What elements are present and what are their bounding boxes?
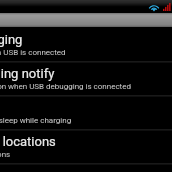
button[interactable]: Stay awake: [0, 97, 172, 131]
other: Wi-Fi: [148, 2, 160, 12]
staticText: USB debugging: [0, 32, 23, 47]
button[interactable]: Allow mock locations: [0, 131, 172, 165]
button[interactable]: USB debugging: [0, 29, 172, 63]
staticText: USB debugging notify: [0, 66, 55, 81]
staticText: Debug mode when USB is connected: [0, 48, 66, 57]
staticText: Screen will never sleep while charging: [0, 116, 72, 125]
button[interactable]: USB debugging notify: [0, 63, 172, 97]
staticText: Allow mock locations: [0, 150, 11, 159]
staticText: Allow mock locations: [0, 134, 56, 149]
staticText: Show a notification when USB debugging i…: [0, 82, 131, 91]
other: Signal strength: [163, 3, 171, 11]
